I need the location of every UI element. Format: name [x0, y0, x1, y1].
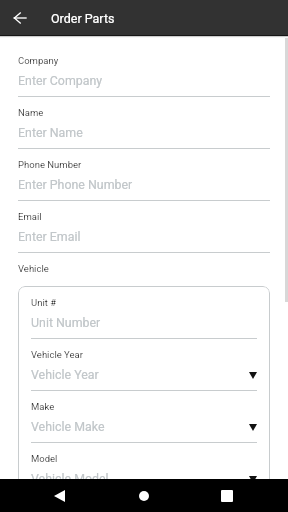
- staticText: Unit Number: [31, 315, 101, 330]
- button[interactable]: Recent apps: [203, 479, 251, 512]
- staticText: Vehicle Make: [31, 419, 105, 434]
- staticText: Unit #: [31, 297, 57, 308]
- button[interactable]: Home: [120, 479, 168, 512]
- staticText: Phone Number: [18, 159, 82, 170]
- staticText: Order Parts: [51, 11, 115, 26]
- button[interactable]: Back: [35, 479, 83, 512]
- staticText: Company: [18, 55, 59, 66]
- staticText: Vehicle Model: [31, 471, 109, 479]
- staticText: Make: [31, 401, 55, 412]
- button[interactable]: Vehicle Year: [31, 339, 257, 391]
- staticText: Enter Name: [18, 125, 83, 140]
- button[interactable]: Company: [18, 45, 270, 97]
- staticText: Email: [18, 211, 42, 222]
- staticText: Name: [18, 107, 44, 118]
- staticText: Enter Phone Number: [18, 177, 133, 192]
- button[interactable]: Back: [6, 0, 33, 35]
- staticText: Vehicle Year: [31, 349, 83, 360]
- button[interactable]: Model: [31, 443, 257, 479]
- staticText: Enter Email: [18, 229, 81, 244]
- button[interactable]: Make: [31, 391, 257, 443]
- staticText: Vehicle Year: [31, 367, 99, 382]
- button[interactable]: Name: [18, 97, 270, 149]
- button[interactable]: Phone Number: [18, 149, 270, 201]
- button[interactable]: Unit #: [31, 287, 257, 339]
- button[interactable]: Email: [18, 201, 270, 253]
- staticText: Model: [31, 453, 58, 464]
- staticText: Enter Company: [18, 73, 103, 88]
- staticText: Vehicle: [18, 263, 49, 274]
